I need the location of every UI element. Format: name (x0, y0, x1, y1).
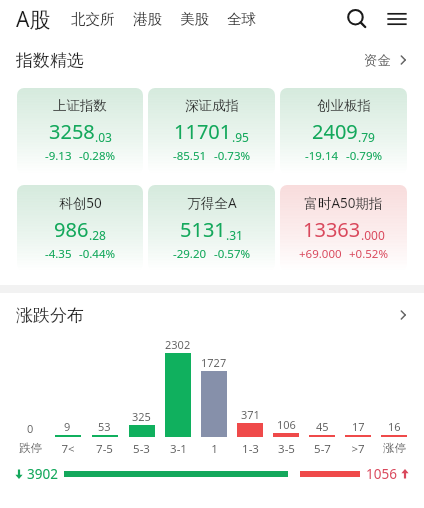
staticText: 3-5 (278, 441, 295, 457)
staticText: 上证指数 (53, 97, 107, 114)
staticText: 9 (64, 419, 71, 434)
button[interactable]: 富时A50期指 (280, 185, 407, 271)
staticText: -0.28% (79, 148, 116, 164)
staticText: 3258 (49, 118, 95, 145)
staticText: 1727 (201, 355, 227, 370)
staticText: .31 (226, 227, 243, 243)
button[interactable]: 指数精选 (0, 38, 424, 82)
button[interactable]: Search (342, 4, 372, 34)
staticText: +0.52% (349, 246, 388, 262)
staticText: 45 (316, 419, 329, 434)
button[interactable]: 深证成指 (148, 88, 275, 174)
staticText: 0 (27, 421, 34, 436)
staticText: -0.79% (346, 148, 383, 164)
staticText: 全球 (227, 10, 256, 28)
staticText: 1-3 (242, 441, 259, 457)
staticText: -0.73% (214, 148, 251, 164)
staticText: 指数精选 (16, 50, 84, 71)
staticText: 7-5 (96, 441, 113, 457)
staticText: 万得全A (187, 194, 237, 212)
staticText: 5-3 (133, 441, 150, 457)
button[interactable]: 美股 (178, 6, 211, 32)
button[interactable]: 科创50 (17, 185, 143, 271)
button[interactable]: 北交所 (69, 6, 117, 32)
staticText: 跌停 (19, 441, 42, 455)
staticText: A股 (16, 5, 51, 34)
staticText: -29.20 (173, 246, 207, 262)
staticText: .28 (89, 227, 106, 243)
staticText: 17 (352, 419, 365, 434)
staticText: -0.44% (79, 246, 116, 262)
staticText: 106 (277, 417, 296, 432)
staticText: 53 (98, 419, 111, 434)
staticText: 986 (54, 216, 89, 243)
button[interactable]: 3902 (0, 463, 424, 485)
staticText: >7 (351, 441, 365, 457)
staticText: -85.51 (173, 148, 207, 164)
staticText: .79 (358, 129, 375, 145)
staticText: 涨停 (383, 441, 406, 455)
staticText: 371 (241, 407, 260, 422)
staticText: 科创50 (59, 194, 102, 212)
staticText: 富时A50期指 (304, 194, 383, 212)
staticText: 港股 (133, 10, 162, 28)
staticText: 325 (132, 409, 151, 424)
button[interactable]: 涨跌分布 (0, 293, 424, 337)
staticText: -19.14 (305, 148, 339, 164)
staticText: 3902 (27, 465, 58, 483)
button[interactable]: Menu (382, 4, 412, 34)
staticText: 深证成指 (185, 97, 239, 114)
staticText: 1 (211, 441, 218, 457)
staticText: .000 (361, 227, 385, 243)
button[interactable]: 万得全A (148, 185, 275, 271)
staticText: 北交所 (71, 10, 115, 28)
staticText: 1056 (366, 465, 397, 483)
staticText: 资金 (364, 52, 391, 69)
staticText: 创业板指 (317, 97, 371, 114)
button[interactable]: 上证指数 (17, 88, 143, 174)
staticText: -4.35 (45, 246, 72, 262)
staticText: 7< (61, 441, 75, 457)
staticText: 13363 (303, 216, 361, 243)
staticText: 涨跌分布 (16, 305, 84, 326)
button[interactable]: 全球 (225, 6, 258, 32)
staticText: 3-1 (170, 441, 187, 457)
button[interactable]: 港股 (131, 6, 164, 32)
staticText: 美股 (180, 10, 209, 28)
staticText: 5-7 (314, 441, 331, 457)
staticText: .03 (95, 129, 112, 145)
staticText: -9.13 (45, 148, 72, 164)
staticText: 5131 (180, 216, 226, 243)
button[interactable]: 创业板指 (280, 88, 407, 174)
button[interactable]: A股 (14, 5, 53, 34)
staticText: 2409 (312, 118, 358, 145)
staticText: -0.57% (214, 246, 251, 262)
staticText: +69.000 (299, 246, 342, 262)
staticText: .95 (232, 129, 249, 145)
staticText: 11701 (174, 118, 232, 145)
staticText: 16 (388, 419, 401, 434)
staticText: 2302 (165, 337, 191, 352)
